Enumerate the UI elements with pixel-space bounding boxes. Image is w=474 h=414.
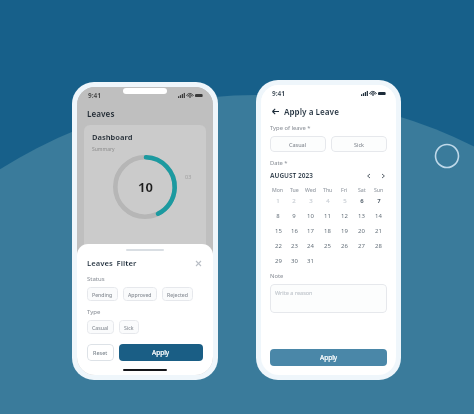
staticText: Sick (124, 324, 134, 331)
button[interactable]: Sick (331, 136, 387, 152)
staticText: 18 (324, 227, 331, 235)
button[interactable]: Reset (87, 344, 114, 361)
staticText: Rejected (167, 291, 188, 298)
staticText: Dashboard (92, 132, 133, 142)
staticText: 16 (291, 227, 298, 235)
staticText: Casual (289, 141, 307, 148)
staticText: AUGUST 2023 (270, 171, 313, 180)
staticText: 5 (343, 197, 347, 205)
staticText: 21 (375, 227, 382, 235)
staticText: 10 (307, 212, 314, 220)
button[interactable]: 3 (302, 193, 319, 208)
staticText: Wed (305, 186, 316, 193)
button[interactable]: 15 (270, 223, 286, 238)
staticText: 14 (375, 212, 382, 220)
button[interactable]: 24 (302, 238, 319, 253)
button[interactable]: 29 (270, 253, 286, 268)
staticText: 2 (292, 197, 296, 205)
button[interactable]: Back (270, 104, 339, 118)
button[interactable]: 5 (336, 193, 353, 208)
staticText: 15 (275, 227, 282, 235)
button[interactable]: 28 (370, 238, 387, 253)
staticText: 23 (291, 242, 298, 250)
staticText: Summary (92, 146, 115, 153)
staticText: Apply (152, 348, 170, 357)
staticText: Date * (270, 159, 288, 167)
staticText: Approved (128, 291, 152, 298)
staticText: Casual (92, 324, 109, 331)
button[interactable]: 19 (336, 223, 353, 238)
button[interactable]: 23 (286, 238, 302, 253)
button[interactable]: 13 (353, 208, 370, 223)
button[interactable]: 25 (319, 238, 336, 253)
button[interactable]: 31 (302, 253, 319, 268)
button[interactable]: Casual (270, 136, 326, 152)
button[interactable]: 1 (270, 193, 286, 208)
button[interactable]: Previous month (365, 172, 373, 180)
button[interactable]: 21 (370, 223, 387, 238)
button[interactable]: Casual (87, 320, 114, 334)
staticText: Leaves Filter (87, 258, 137, 268)
staticText: Fri (341, 186, 348, 193)
button[interactable]: Approved (123, 287, 157, 301)
staticText: 12 (341, 212, 348, 220)
staticText: Status (87, 275, 105, 283)
staticText: 1 (276, 197, 280, 205)
staticText: 26 (341, 242, 348, 250)
other: Back (270, 106, 280, 116)
staticText: 13 (358, 212, 365, 220)
button[interactable]: 9 (286, 208, 302, 223)
button[interactable]: 27 (353, 238, 370, 253)
button[interactable]: 18 (319, 223, 336, 238)
staticText: Mon (272, 186, 284, 193)
staticText: Pending (92, 291, 113, 298)
staticText: 4 (326, 197, 330, 205)
button[interactable]: 26 (336, 238, 353, 253)
button[interactable]: 8 (270, 208, 286, 223)
staticText: 30 (291, 257, 298, 265)
button[interactable]: 17 (302, 223, 319, 238)
staticText: Tue (290, 186, 299, 193)
staticText: Reset (93, 349, 108, 356)
button[interactable]: 30 (286, 253, 302, 268)
staticText: 10 (138, 178, 153, 196)
button[interactable]: 22 (270, 238, 286, 253)
staticText: 9:41 (88, 91, 101, 100)
button[interactable]: Pending (87, 287, 118, 301)
staticText: 7 (377, 197, 381, 205)
staticText: 8 (276, 212, 280, 220)
staticText: Write a reason (275, 289, 313, 296)
button[interactable]: 20 (353, 223, 370, 238)
staticText: Leaves (87, 108, 115, 119)
button[interactable]: Next month (379, 172, 387, 180)
staticText: 19 (341, 227, 348, 235)
staticText: 27 (358, 242, 365, 250)
staticText: 29 (275, 257, 282, 265)
staticText: 3 (309, 197, 313, 205)
button[interactable]: 12 (336, 208, 353, 223)
staticText: Note (270, 272, 284, 280)
staticText: 6 (360, 197, 364, 205)
button[interactable]: 16 (286, 223, 302, 238)
button[interactable]: 6 (353, 193, 370, 208)
button[interactable]: Close (193, 258, 203, 268)
staticText: 24 (307, 242, 314, 250)
button[interactable]: 4 (319, 193, 336, 208)
staticText: 25 (324, 242, 331, 250)
button[interactable]: Apply (119, 344, 203, 361)
button[interactable]: Rejected (162, 287, 193, 301)
button[interactable]: 10 (302, 208, 319, 223)
button[interactable]: 2 (286, 193, 302, 208)
button[interactable]: Write a reason (270, 284, 387, 313)
staticText: 22 (275, 242, 282, 250)
staticText: Type of leave * (270, 124, 311, 132)
button[interactable]: 11 (319, 208, 336, 223)
staticText: 31 (307, 257, 314, 265)
staticText: Sun (374, 186, 384, 193)
staticText: Sat (358, 186, 366, 193)
button[interactable]: 7 (370, 193, 387, 208)
button[interactable]: 14 (370, 208, 387, 223)
button[interactable]: Sick (119, 320, 139, 334)
button[interactable]: Apply (270, 349, 387, 366)
staticText: Thu (323, 186, 333, 193)
